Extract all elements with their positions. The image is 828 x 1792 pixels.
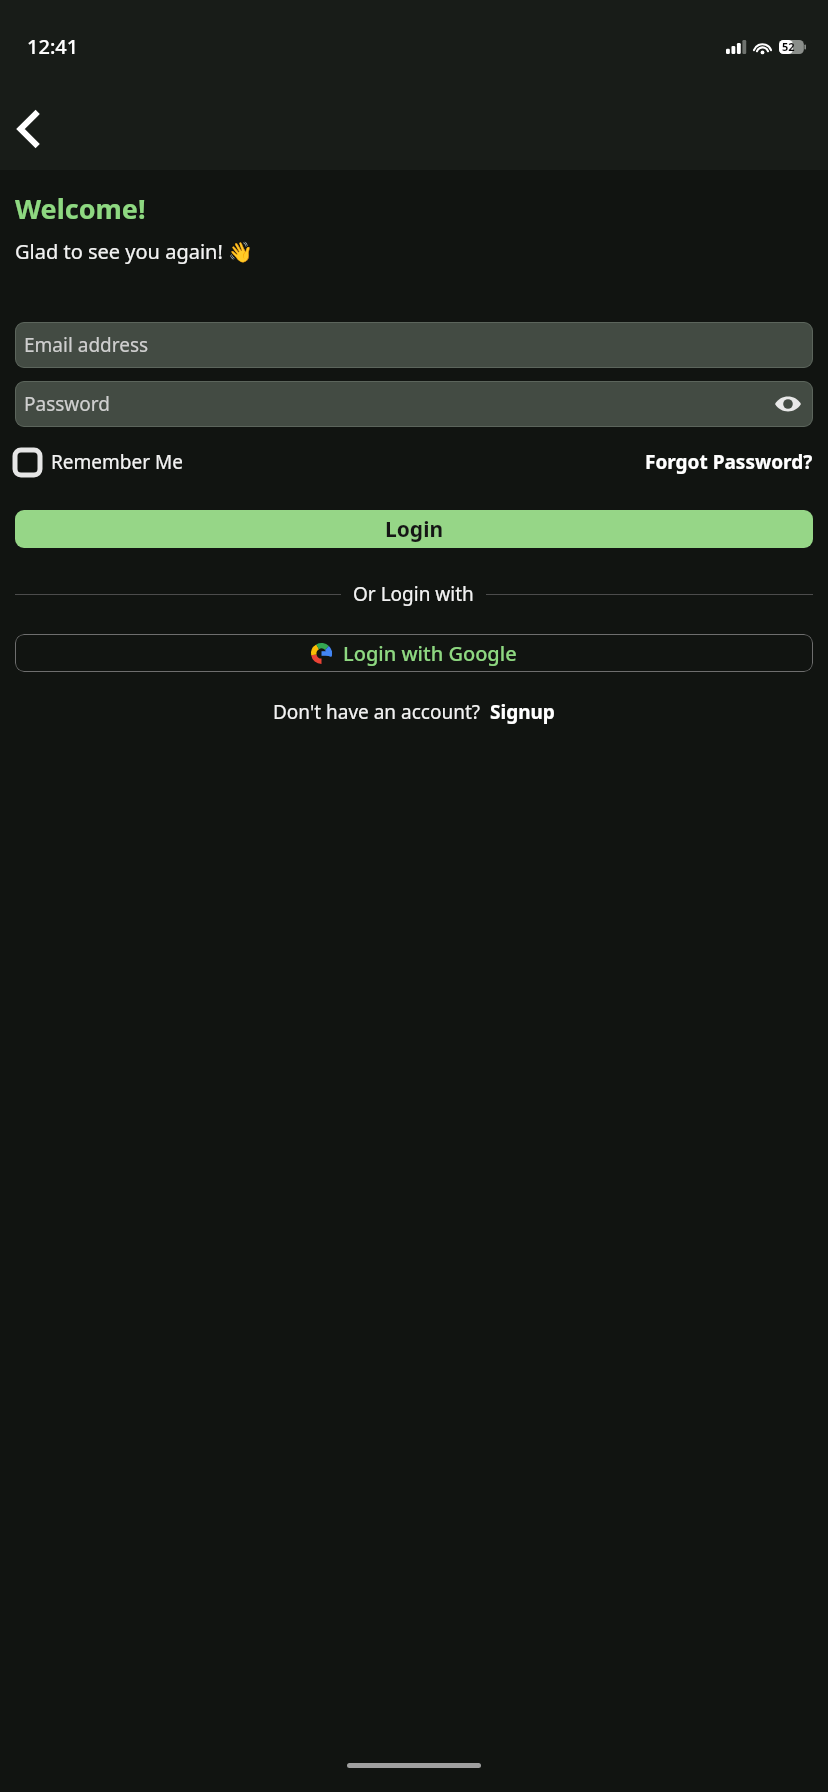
- button[interactable]: Forgot Password?: [645, 449, 813, 475]
- staticText: 52: [782, 39, 795, 54]
- button[interactable]: Email address: [15, 322, 813, 368]
- button[interactable]: Login with Google: [15, 634, 813, 672]
- button[interactable]: Show password: [771, 387, 805, 421]
- staticText: Password: [24, 391, 110, 417]
- staticText: Welcome!: [15, 190, 146, 227]
- staticText: Glad to see you again! 👋: [15, 238, 253, 265]
- staticText: Forgot Password?: [645, 449, 813, 475]
- button[interactable]: Login: [15, 510, 813, 548]
- staticText: Email address: [24, 332, 149, 358]
- staticText: 12:41: [27, 33, 79, 60]
- button[interactable]: Password: [15, 381, 813, 427]
- staticText: Don't have an account?: [273, 699, 481, 725]
- button[interactable]: Back: [8, 109, 48, 149]
- staticText: Login with Google: [343, 640, 517, 667]
- staticText: Login: [385, 515, 444, 544]
- staticText: Or Login with: [353, 581, 474, 607]
- button[interactable]: Don't have an account?: [273, 699, 555, 725]
- button[interactable]: Remember Me: [15, 449, 183, 475]
- staticText: Remember Me: [51, 449, 183, 475]
- staticText: Signup: [490, 699, 555, 725]
